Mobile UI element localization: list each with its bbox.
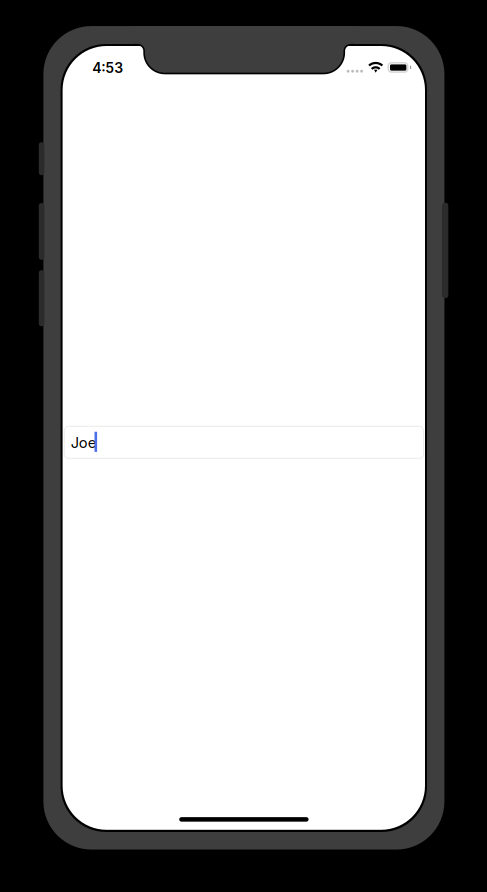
staticText: Joe	[71, 434, 97, 451]
staticText: 4:53	[92, 59, 123, 76]
button[interactable]: Joe	[64, 426, 424, 458]
